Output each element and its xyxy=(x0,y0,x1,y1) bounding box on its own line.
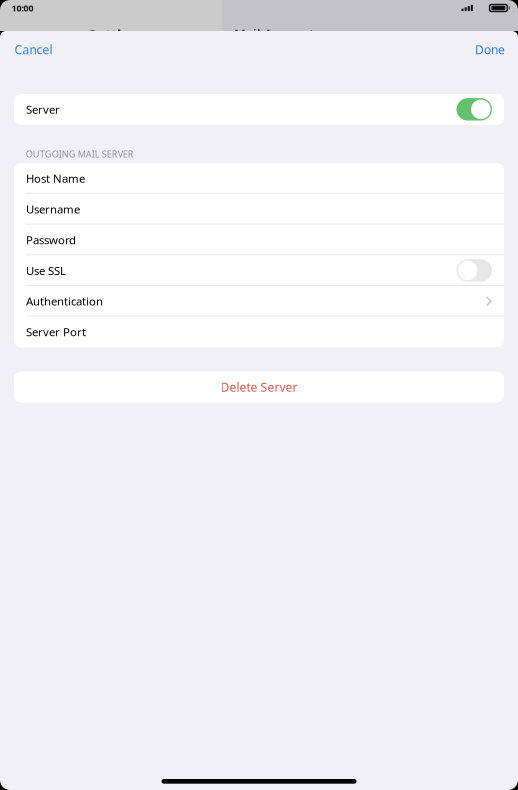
button[interactable]: Host Name xyxy=(14,163,504,194)
staticText: Password xyxy=(26,232,76,247)
staticText: 10:00 xyxy=(11,2,33,14)
staticText: Done xyxy=(475,41,505,58)
button[interactable]: Authentication xyxy=(14,286,504,316)
button[interactable]: Delete Server xyxy=(0,372,518,402)
button[interactable]: Password xyxy=(14,224,504,255)
staticText: Mail Accounts xyxy=(234,25,320,42)
button[interactable]: Server xyxy=(14,94,504,125)
staticText: Cancel xyxy=(14,41,52,58)
staticText: Use SSL xyxy=(26,263,66,278)
button[interactable]: Done xyxy=(462,36,518,62)
button[interactable]: Server Port xyxy=(14,316,504,347)
staticText: Server Port xyxy=(26,324,86,340)
staticText: Settings xyxy=(88,25,147,45)
staticText: Server xyxy=(26,102,60,117)
staticText: Username xyxy=(26,201,80,217)
staticText: Delete Server xyxy=(220,379,297,395)
button[interactable]: Cancel xyxy=(0,36,67,62)
staticText: Host Name xyxy=(26,171,85,186)
staticText: Authentication xyxy=(26,293,103,309)
button[interactable]: Use SSL xyxy=(14,255,504,286)
staticText: OUTGOING MAIL SERVER xyxy=(26,148,134,160)
button[interactable]: Username xyxy=(14,194,504,224)
